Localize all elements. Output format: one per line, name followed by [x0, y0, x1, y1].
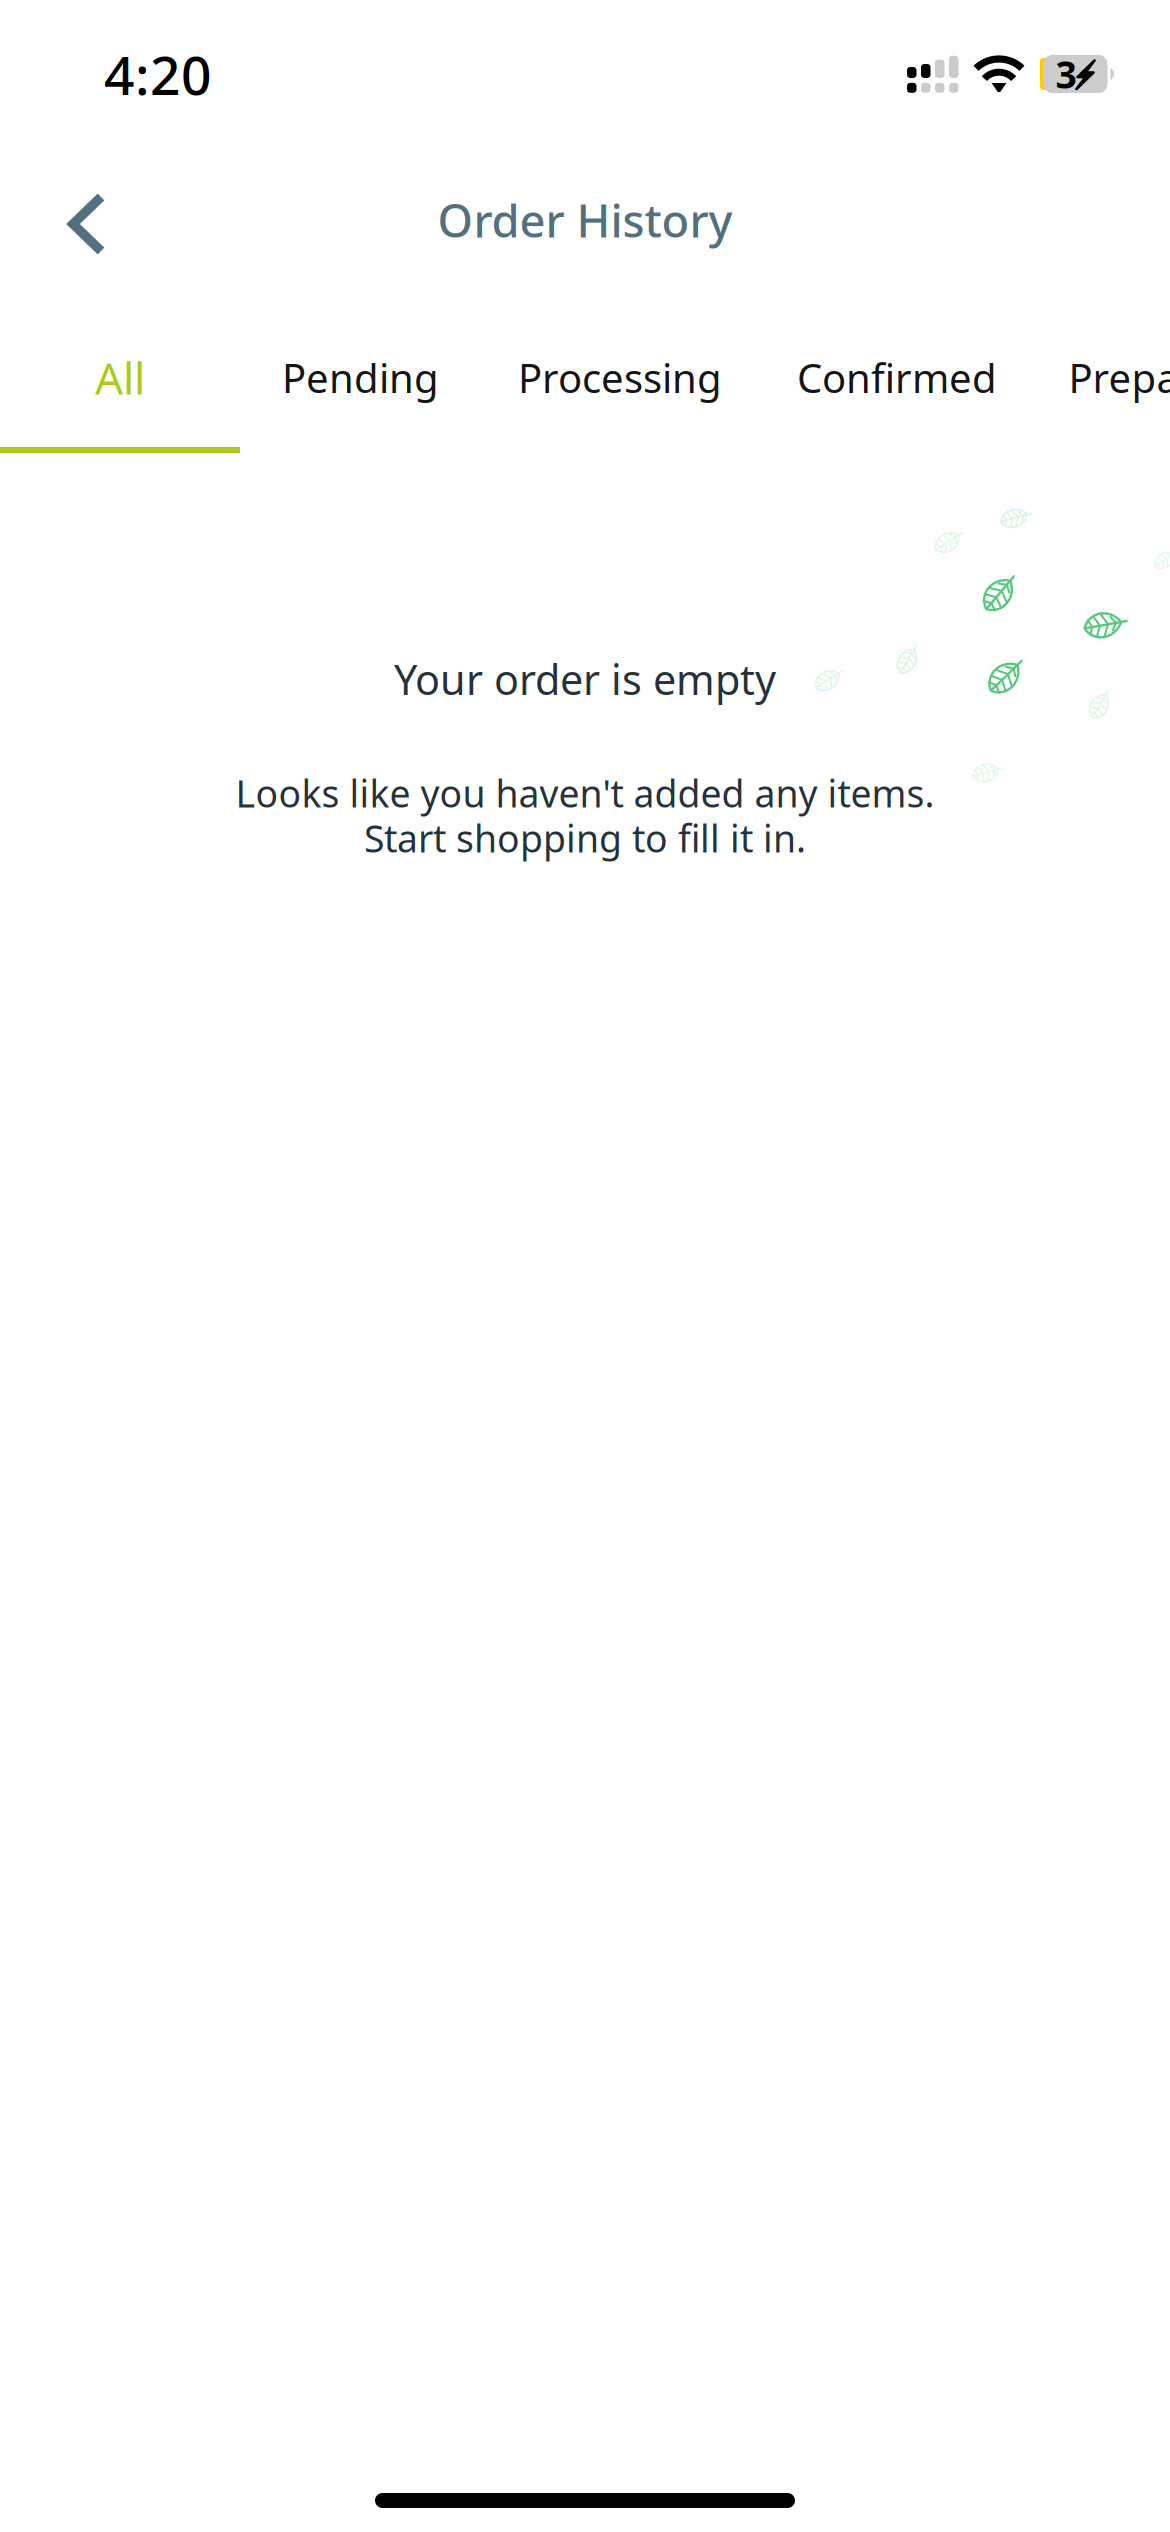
button[interactable]: Confirmed — [764, 313, 1030, 442]
button[interactable]: Back — [54, 168, 166, 280]
staticText: Pending — [282, 351, 439, 404]
button[interactable]: Processing — [476, 313, 764, 442]
button[interactable]: All — [0, 313, 240, 442]
staticText: 4:20 — [104, 39, 212, 110]
staticText: Your order is empty — [394, 652, 776, 706]
staticText: Preparing — [1068, 351, 1170, 404]
staticText: Looks like you haven't added any items. — [235, 768, 934, 818]
button[interactable]: Pending — [245, 313, 476, 442]
staticText: Processing — [518, 351, 722, 404]
staticText: Confirmed — [797, 351, 997, 404]
staticText: All — [95, 348, 145, 407]
button[interactable]: Preparing — [1030, 313, 1170, 442]
staticText: Start shopping to fill it in. — [364, 813, 806, 863]
staticText: Order History — [437, 190, 732, 250]
staticText: 3 — [1055, 49, 1076, 99]
